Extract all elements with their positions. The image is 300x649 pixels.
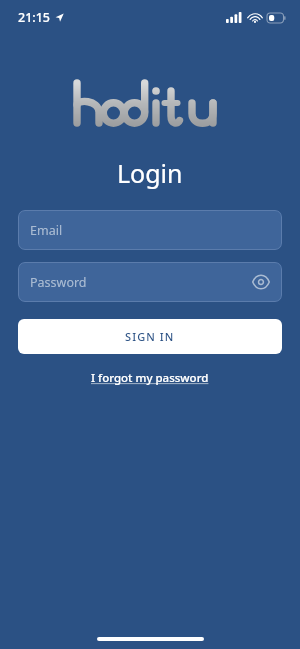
- staticText: Login: [117, 156, 183, 190]
- staticText: Email: [30, 222, 63, 239]
- staticText: SIGN IN: [125, 329, 175, 344]
- button[interactable]: Show password: [248, 269, 274, 295]
- button[interactable]: SIGN IN: [18, 319, 282, 354]
- button[interactable]: Password: [18, 262, 282, 302]
- staticText: I forgot my password: [91, 370, 209, 386]
- staticText: 21:15: [18, 9, 51, 26]
- button[interactable]: I forgot my password: [85, 367, 215, 389]
- button[interactable]: Email: [18, 210, 282, 250]
- staticText: Password: [30, 274, 87, 291]
